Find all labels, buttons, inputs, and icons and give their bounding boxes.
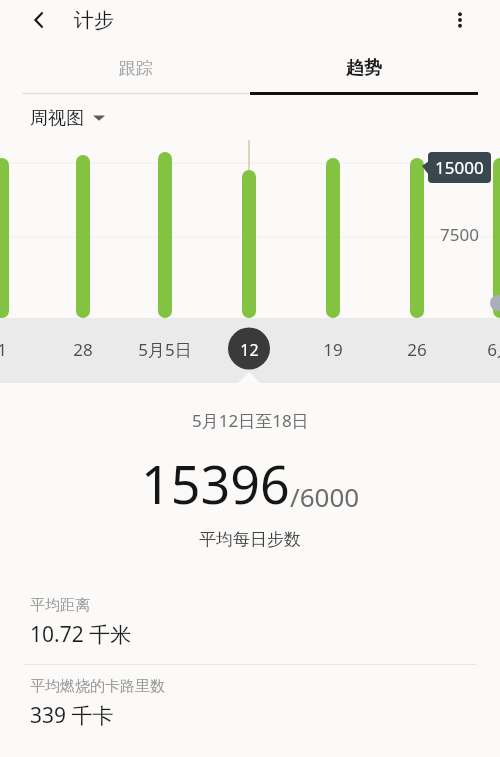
button[interactable]: 26 bbox=[377, 318, 457, 383]
staticText: 12 bbox=[240, 339, 259, 361]
staticText: 19 bbox=[323, 338, 343, 361]
staticText: 周视图 bbox=[30, 107, 84, 130]
staticText: 6月 bbox=[487, 338, 500, 361]
button[interactable]: 平均距离 bbox=[0, 584, 500, 665]
button[interactable]: 19 bbox=[293, 318, 373, 383]
staticText: 平均每日步数 bbox=[199, 529, 301, 550]
button[interactable]: 12 bbox=[209, 318, 289, 383]
staticText: 5月5日 bbox=[138, 338, 192, 361]
staticText: 15000 bbox=[435, 156, 484, 179]
staticText: 339 千卡 bbox=[30, 701, 114, 730]
staticText: 平均距离 bbox=[30, 596, 90, 615]
staticText: 5月12日至18日 bbox=[192, 409, 309, 432]
staticText: 趋势 bbox=[346, 57, 382, 80]
button[interactable]: 6月 bbox=[460, 318, 500, 383]
staticText: 计步 bbox=[74, 8, 114, 33]
staticText: 跟踪 bbox=[119, 58, 153, 79]
button[interactable]: 周视图 bbox=[30, 96, 500, 140]
staticText: 平均燃烧的卡路里数 bbox=[30, 677, 165, 696]
button[interactable]: 5月5日 bbox=[125, 318, 205, 383]
staticText: 26 bbox=[407, 338, 427, 361]
staticText: 28 bbox=[73, 338, 93, 361]
staticText: 7500 bbox=[440, 223, 479, 246]
staticText: 15396 bbox=[141, 448, 290, 519]
staticText: 1 bbox=[0, 338, 7, 361]
button[interactable]: Back bbox=[22, 3, 56, 37]
staticText: 10.72 千米 bbox=[30, 620, 132, 649]
button[interactable]: 1 bbox=[0, 318, 42, 383]
button[interactable]: More options bbox=[442, 2, 478, 38]
button[interactable]: 28 bbox=[43, 318, 123, 383]
button[interactable]: 平均燃烧的卡路里数 bbox=[0, 665, 500, 745]
staticText: /6000 bbox=[290, 479, 360, 514]
button[interactable]: 趋势 bbox=[250, 40, 478, 96]
button[interactable]: 跟踪 bbox=[22, 40, 250, 96]
